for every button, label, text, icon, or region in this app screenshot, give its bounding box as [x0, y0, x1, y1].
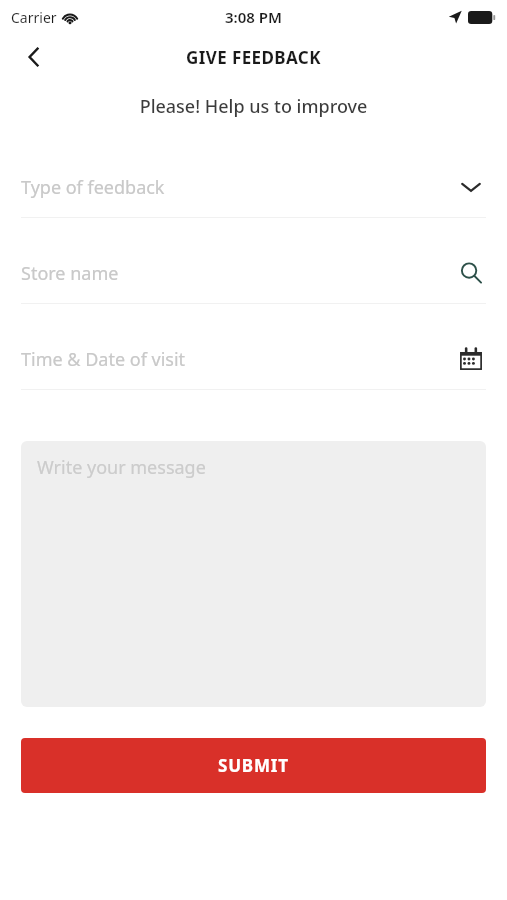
- staticText: Write your message: [37, 455, 206, 480]
- other: Pick time and date: [460, 348, 482, 370]
- other: Search store: [459, 261, 483, 285]
- staticText: 3:08 PM: [225, 7, 282, 27]
- staticText: SUBMIT: [218, 754, 289, 777]
- staticText: Please! Help us to improve: [0, 94, 507, 119]
- button[interactable]: Store name: [0, 243, 507, 329]
- staticText: Store name: [21, 261, 456, 286]
- button[interactable]: SUBMIT: [21, 738, 486, 793]
- staticText: GIVE FEEDBACK: [186, 46, 321, 69]
- other: Open type of feedback list: [460, 176, 482, 198]
- staticText: Time & Date of visit: [21, 347, 456, 372]
- button[interactable]: Back: [12, 35, 56, 79]
- button[interactable]: Time & Date of visit: [0, 329, 507, 415]
- staticText: Type of feedback: [21, 175, 456, 200]
- button[interactable]: Type of feedback: [0, 157, 507, 243]
- staticText: Carrier: [11, 8, 57, 27]
